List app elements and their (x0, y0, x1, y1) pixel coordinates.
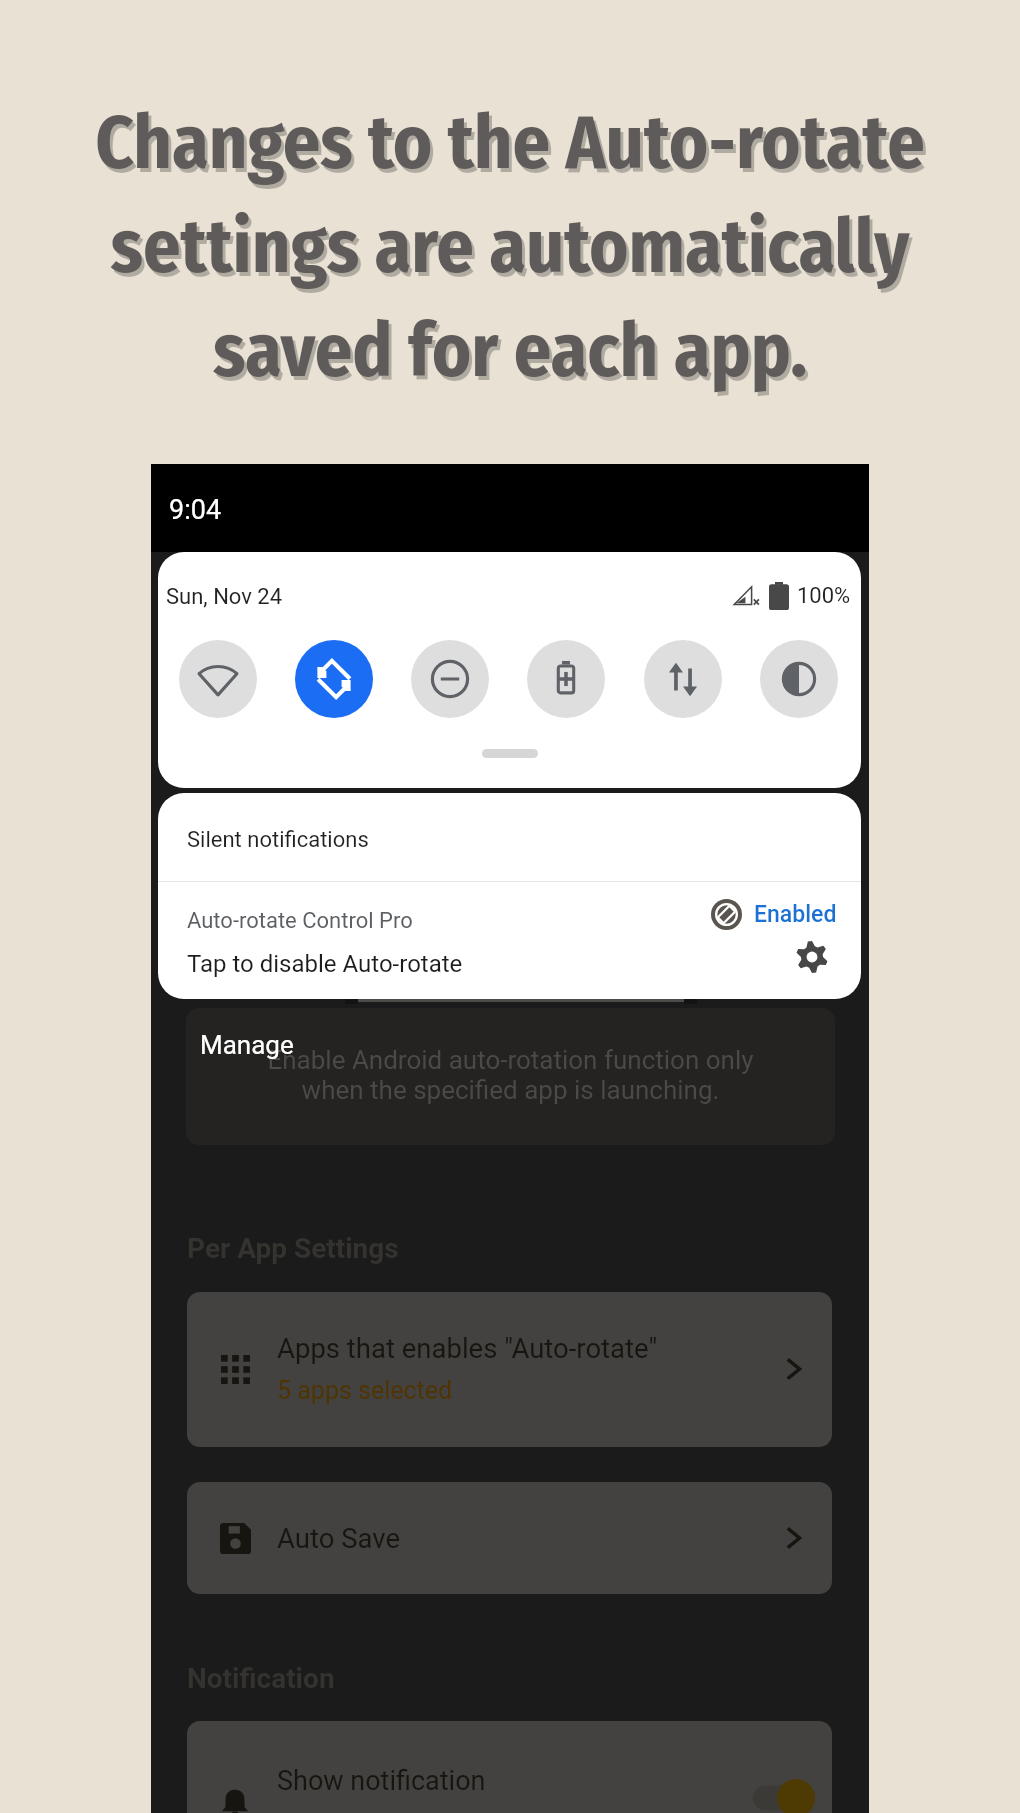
button[interactable]: Silent notifications (158, 793, 861, 881)
staticText: 9:04 (169, 494, 222, 526)
button[interactable]: Auto Save (187, 1482, 832, 1594)
staticText: 5 apps selected (277, 1376, 453, 1405)
button[interactable]: Auto-rotate (295, 640, 373, 718)
button[interactable]: Battery Saver (527, 640, 605, 718)
staticText: 100% (797, 583, 851, 609)
button[interactable]: Auto-rotate Control Pro (158, 882, 861, 999)
staticText: Auto-rotate Control Pro (187, 908, 413, 934)
button[interactable]: Notification settings (792, 937, 832, 977)
staticText: Per App Settings (187, 1232, 399, 1265)
button[interactable]: Do not disturb (411, 640, 489, 718)
staticText: Sun, Nov 24 (166, 584, 283, 610)
staticText: Show notification (277, 1765, 486, 1797)
button[interactable]: Show notification (187, 1721, 832, 1813)
staticText: Notification (187, 1662, 335, 1695)
staticText: Tap to disable Auto-rotate (187, 950, 463, 978)
staticText: Auto Save (277, 1522, 400, 1554)
staticText: Manage (200, 1030, 294, 1060)
button[interactable]: Wi-Fi (179, 640, 257, 718)
button[interactable]: Dark theme (760, 640, 838, 718)
staticText: Silent notifications (187, 827, 369, 853)
staticText: Apps that enables "Auto-rotate" (277, 1332, 658, 1364)
button[interactable]: Mobile data (644, 640, 722, 718)
staticText: Changes to the Auto-rotate settings are … (3, 103, 1020, 400)
staticText: Enabled (754, 901, 837, 928)
button[interactable]: Apps that enables "Auto-rotate" (187, 1292, 832, 1447)
staticText: Enable Android auto-rotation function on… (186, 1045, 835, 1105)
staticText: Changes to the Auto-rotate settings are … (0, 99, 1020, 396)
